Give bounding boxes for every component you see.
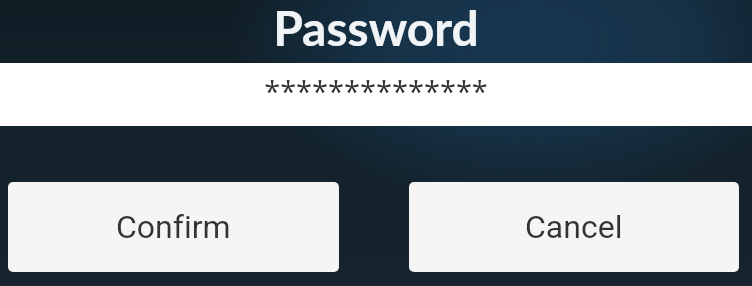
staticText: Password [273, 0, 479, 57]
staticText: ************** [264, 71, 488, 110]
button[interactable]: ************** [0, 63, 752, 126]
button[interactable]: Confirm [8, 182, 339, 272]
button[interactable]: Cancel [409, 182, 739, 272]
staticText: Confirm [116, 208, 231, 246]
staticText: Cancel [525, 208, 623, 246]
